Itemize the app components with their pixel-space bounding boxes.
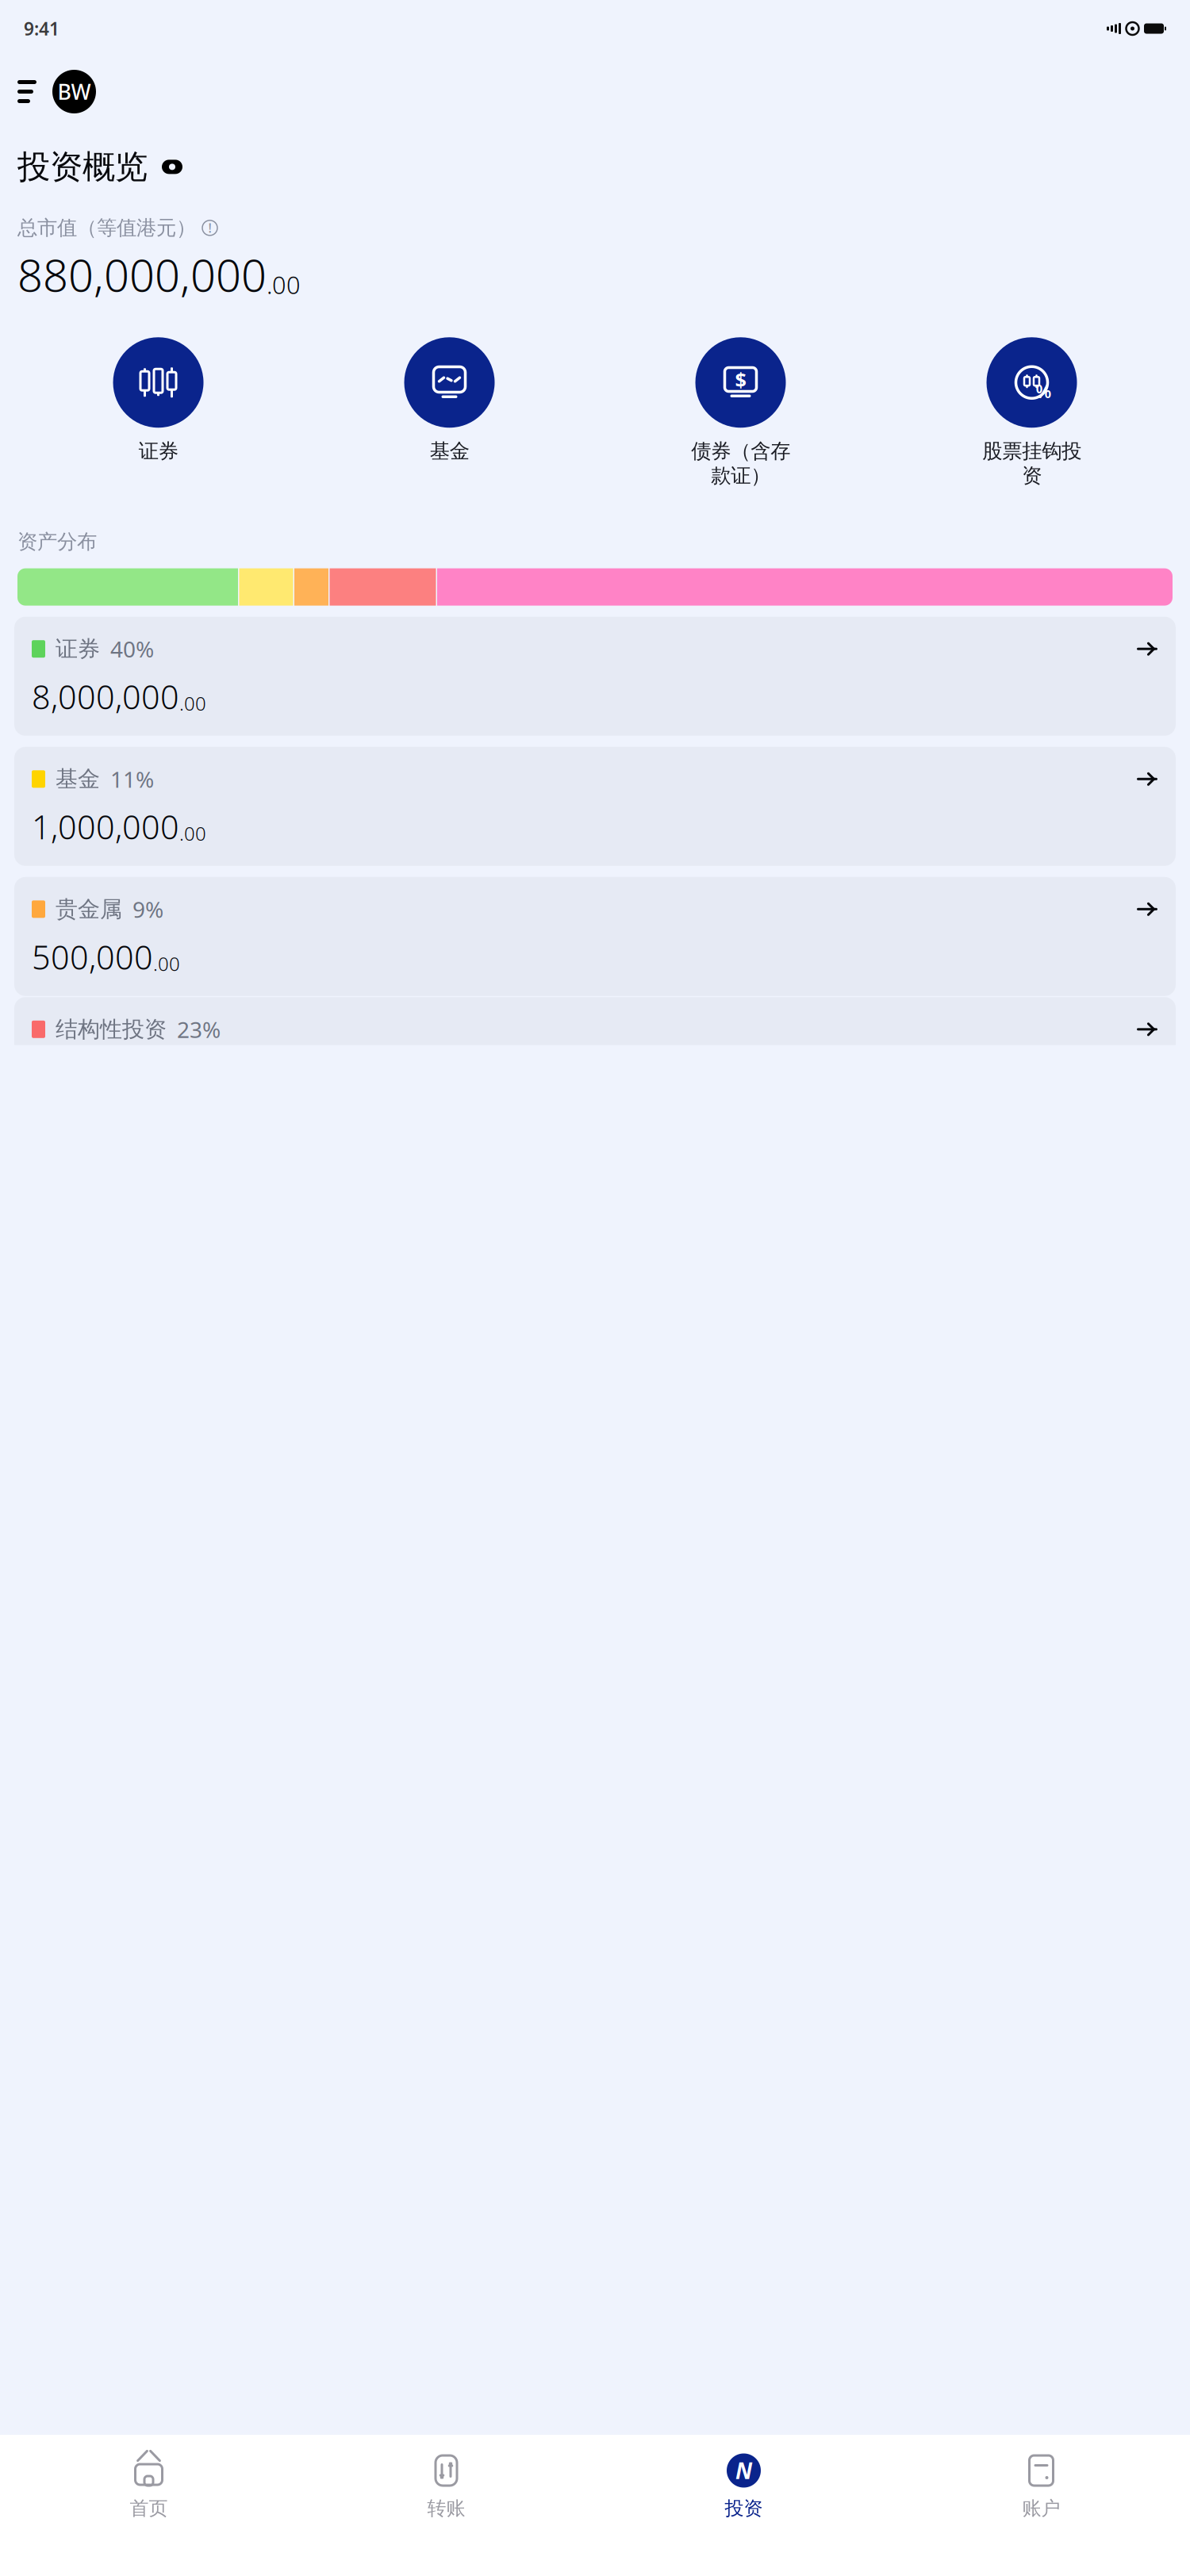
button[interactable]: 转账 — [297, 2449, 595, 2523]
staticText: 基金 — [56, 765, 100, 793]
button[interactable]: 证券 — [14, 617, 1176, 736]
staticText: 账户 — [1022, 2497, 1060, 2520]
button[interactable]: Profile — [52, 70, 96, 113]
staticText: 11% — [110, 764, 154, 794]
staticText: 资产分布 — [17, 529, 97, 554]
staticText: 基金 — [430, 439, 469, 463]
button[interactable]: N — [595, 2449, 892, 2523]
staticText: 贵金属 — [56, 895, 122, 923]
button[interactable]: 结构性投资 — [14, 997, 1176, 1055]
button[interactable]: 首页 — [0, 2449, 297, 2523]
staticText: 1,000,000 — [32, 805, 179, 848]
staticText: 证券 — [56, 635, 100, 663]
staticText: 证券 — [138, 439, 178, 463]
staticText: 8,000,000 — [32, 675, 179, 718]
staticText: 结构性投资 — [56, 1016, 167, 1043]
staticText: .00 — [179, 821, 206, 846]
staticText: .00 — [179, 691, 206, 716]
staticText: 9:41 — [24, 17, 59, 40]
button[interactable]: 基金 — [304, 337, 595, 463]
button[interactable]: % — [886, 337, 1177, 488]
staticText: 40% — [110, 634, 154, 664]
button[interactable]: $ — [595, 337, 886, 488]
button[interactable]: 证券 — [13, 337, 304, 463]
staticText: 880,000,000 — [17, 245, 267, 304]
button[interactable]: 基金 — [14, 747, 1176, 866]
staticText: 9% — [132, 894, 163, 924]
staticText: 债券（含存 款证） — [691, 439, 790, 488]
staticText: 投资 — [725, 2497, 763, 2520]
staticText: .00 — [267, 268, 301, 301]
staticText: 股票挂钩投 资 — [982, 439, 1081, 488]
button[interactable]: Hide balance — [160, 155, 184, 179]
staticText: .00 — [153, 951, 180, 976]
staticText: BW — [58, 78, 91, 106]
staticText: 首页 — [130, 2497, 168, 2520]
staticText: ! — [208, 219, 211, 236]
staticText: $ — [735, 366, 746, 393]
button[interactable]: Menu — [17, 78, 41, 105]
staticText: 500,000 — [32, 935, 153, 979]
staticText: % — [1036, 379, 1052, 403]
staticText: 总市值（等值港元） — [17, 216, 196, 240]
staticText: 转账 — [427, 2497, 465, 2520]
button[interactable]: 贵金属 — [14, 877, 1176, 996]
staticText: N — [735, 2456, 752, 2485]
staticText: 23% — [177, 1015, 221, 1044]
button[interactable]: 账户 — [892, 2449, 1190, 2523]
staticText: 投资概览 — [17, 147, 148, 187]
